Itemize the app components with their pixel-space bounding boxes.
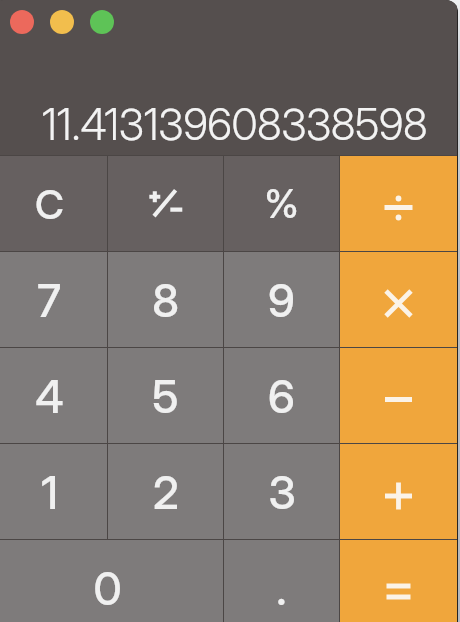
- button[interactable]: .: [224, 540, 339, 622]
- button[interactable]: Equals: [340, 540, 457, 622]
- staticText: 1: [41, 465, 58, 519]
- staticText: 7: [37, 273, 61, 327]
- button[interactable]: Minimize window: [50, 10, 74, 34]
- button[interactable]: 6: [224, 348, 339, 443]
- staticText: 6: [268, 369, 295, 423]
- button[interactable]: Plus minus: [108, 156, 223, 251]
- staticText: 3: [268, 465, 296, 519]
- button[interactable]: 3: [224, 444, 339, 539]
- button[interactable]: 4: [0, 348, 107, 443]
- button[interactable]: 0: [0, 540, 223, 622]
- staticText: C: [35, 180, 64, 228]
- button[interactable]: C: [0, 156, 107, 251]
- button[interactable]: Subtract: [340, 348, 457, 443]
- staticText: 9: [268, 273, 295, 327]
- staticText: .: [276, 561, 287, 615]
- staticText: 11.413139608338598: [42, 98, 428, 150]
- button[interactable]: 8: [108, 252, 223, 347]
- button[interactable]: Add: [340, 444, 457, 539]
- button[interactable]: Close window: [10, 10, 34, 34]
- button[interactable]: 7: [0, 252, 107, 347]
- button[interactable]: Multiply: [340, 252, 457, 347]
- staticText: 2: [153, 465, 179, 519]
- staticText: %: [264, 180, 299, 227]
- staticText: 4: [35, 369, 64, 423]
- button[interactable]: 2: [108, 444, 223, 539]
- staticText: 8: [152, 273, 179, 327]
- button[interactable]: %: [224, 156, 339, 251]
- staticText: 0: [93, 561, 122, 615]
- staticText: 5: [152, 369, 179, 423]
- button[interactable]: Divide: [340, 156, 457, 251]
- button[interactable]: 9: [224, 252, 339, 347]
- button[interactable]: Zoom window: [90, 10, 114, 34]
- button[interactable]: 1: [0, 444, 107, 539]
- button[interactable]: 5: [108, 348, 223, 443]
